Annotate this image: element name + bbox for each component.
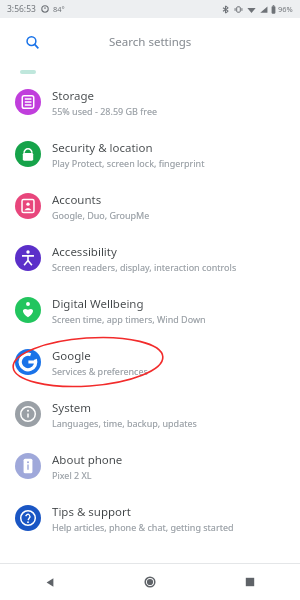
button[interactable]: Tips & support xyxy=(0,492,300,544)
staticText: Accessibility xyxy=(52,244,117,260)
staticText: 55% used - 28.59 GB free xyxy=(52,105,158,117)
staticText: Google xyxy=(52,348,91,364)
staticText: Languages, time, backup, updates xyxy=(52,417,197,429)
staticText: 96% xyxy=(278,4,293,14)
button[interactable]: Security & location xyxy=(0,128,300,180)
staticText: Storage xyxy=(52,88,94,104)
staticText: Play Protect, screen lock, fingerprint xyxy=(52,157,205,169)
button[interactable]: About phone xyxy=(0,440,300,492)
staticText: 84° xyxy=(53,4,65,14)
button[interactable]: Recent apps xyxy=(200,564,300,600)
button[interactable]: Digital Wellbeing xyxy=(0,284,300,336)
button[interactable]: Back xyxy=(0,564,100,600)
staticText: Accounts xyxy=(52,192,102,208)
button[interactable]: Storage xyxy=(0,76,300,128)
staticText: Security & location xyxy=(52,140,153,156)
staticText: Screen readers, display, interaction con… xyxy=(52,261,237,273)
staticText: About phone xyxy=(52,452,123,468)
button[interactable]: Home xyxy=(100,564,200,600)
staticText: Help articles, phone & chat, getting sta… xyxy=(52,521,234,533)
button[interactable]: System xyxy=(0,388,300,440)
staticText: Search settings xyxy=(109,34,192,50)
staticText: Services & preferences xyxy=(52,365,148,377)
staticText: System xyxy=(52,400,92,416)
button[interactable]: Accessibility xyxy=(0,232,300,284)
staticText: Digital Wellbeing xyxy=(52,296,144,312)
staticText: Pixel 2 XL xyxy=(52,469,92,481)
button[interactable]: Search settings xyxy=(12,25,288,59)
staticText: Screen time, app timers, Wind Down xyxy=(52,313,206,325)
staticText: Google, Duo, GroupMe xyxy=(52,209,150,221)
staticText: 3:56:53 xyxy=(7,3,36,15)
staticText: Tips & support xyxy=(52,504,131,520)
button[interactable]: Google xyxy=(0,336,300,388)
button[interactable]: Accounts xyxy=(0,180,300,232)
